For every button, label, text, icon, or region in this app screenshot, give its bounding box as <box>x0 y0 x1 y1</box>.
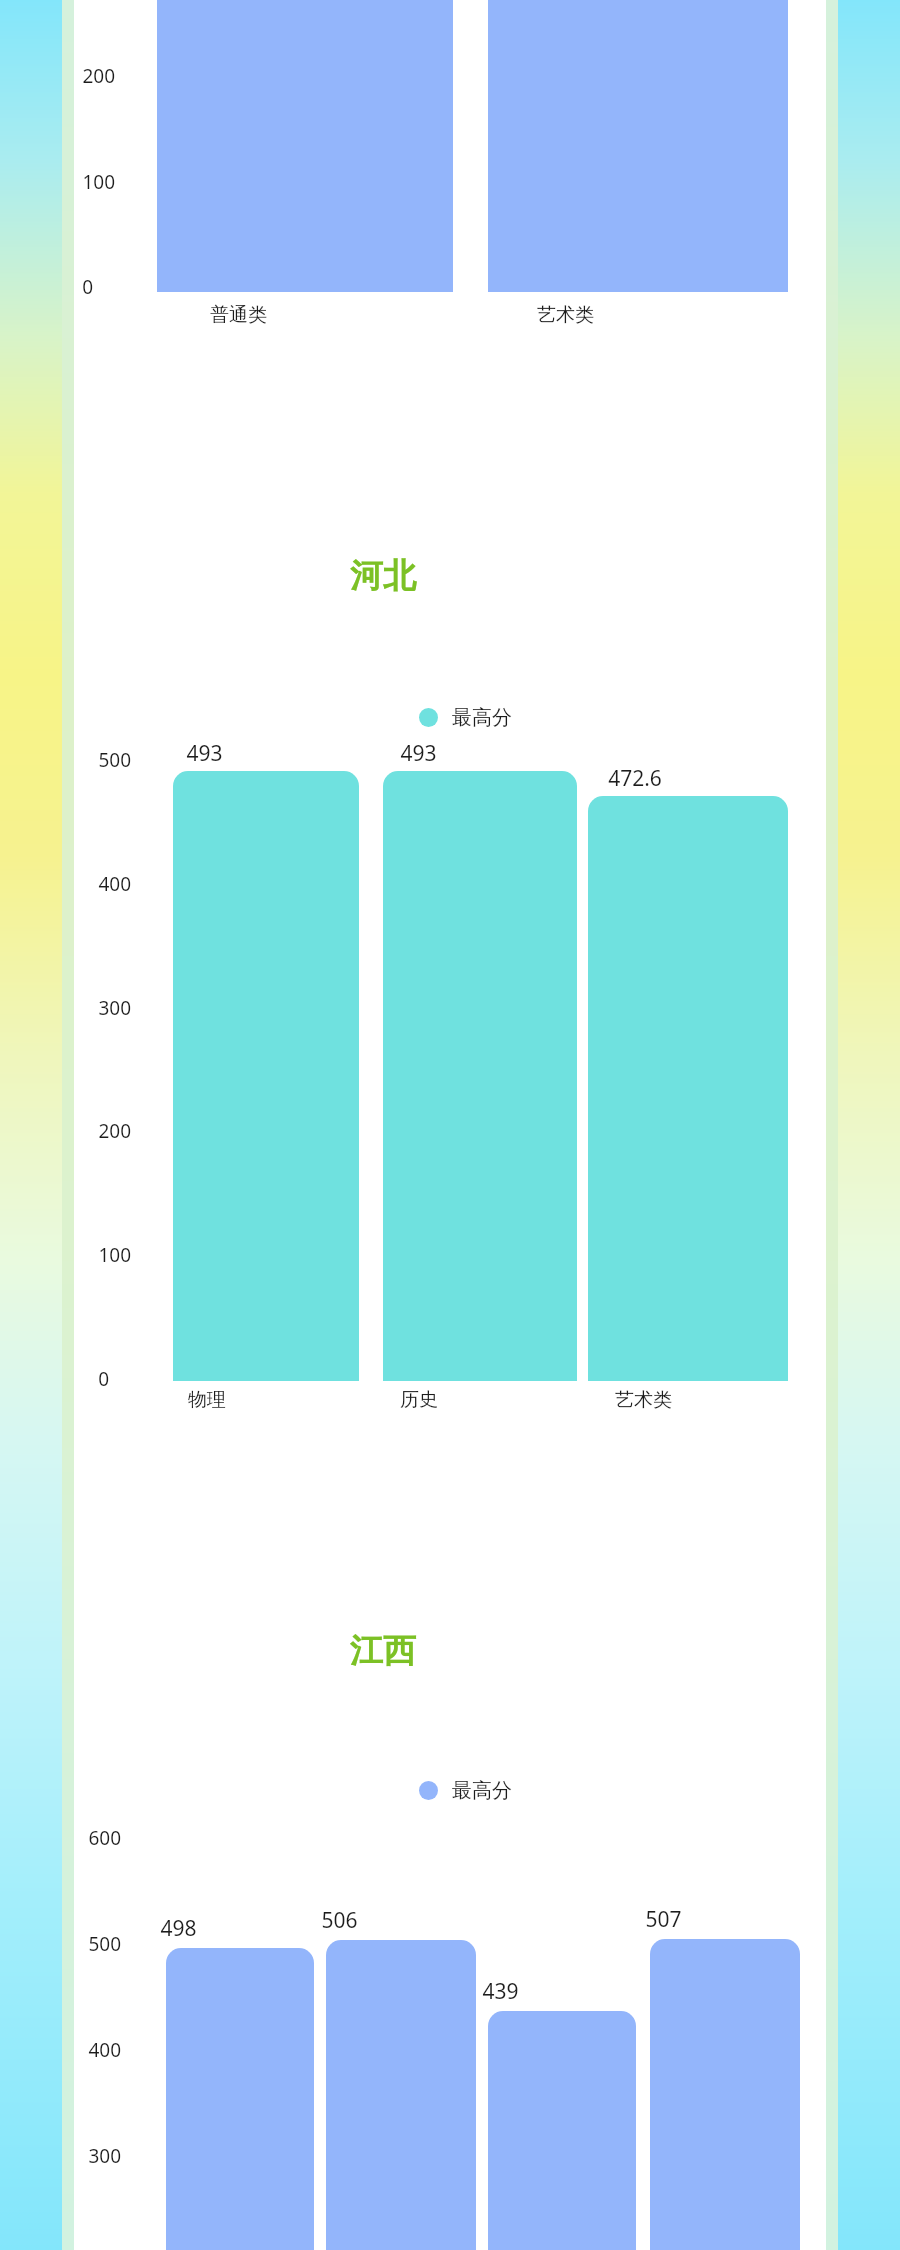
staticText: 最高分 <box>452 705 512 730</box>
staticText: 400 <box>98 871 131 897</box>
button[interactable]: 历史 493 <box>383 771 577 1381</box>
staticText: 300 <box>88 2143 121 2169</box>
staticText: 200 <box>98 1118 131 1144</box>
staticText: 100 <box>82 169 115 195</box>
staticText: 500 <box>88 1931 121 1957</box>
staticText: 200 <box>82 63 115 89</box>
staticText: 472.6 <box>608 764 662 793</box>
button[interactable]: 506 <box>326 1940 476 2250</box>
staticText: 600 <box>88 1825 121 1851</box>
button[interactable] <box>411 698 591 738</box>
staticText: 艺术类 <box>537 303 594 327</box>
staticText: 100 <box>98 1242 131 1268</box>
staticText: 物理 <box>188 1388 226 1412</box>
staticText: 历史 <box>400 1388 438 1412</box>
staticText: 300 <box>98 995 131 1021</box>
staticText: 江西 <box>350 1630 416 1672</box>
staticText: 493 <box>186 739 223 768</box>
staticText: 439 <box>482 1977 519 2006</box>
button[interactable] <box>411 1771 591 1811</box>
staticText: 最高分 <box>452 1778 512 1803</box>
staticText: 498 <box>160 1914 197 1943</box>
staticText: 0 <box>82 274 93 300</box>
button[interactable]: 艺术类 472.6 <box>588 796 788 1381</box>
staticText: 507 <box>645 1905 682 1934</box>
staticText: 500 <box>98 747 131 773</box>
staticText: 400 <box>88 2037 121 2063</box>
staticText: 506 <box>321 1906 358 1935</box>
staticText: 河北 <box>350 555 416 597</box>
staticText: 493 <box>400 739 437 768</box>
button[interactable]: 439 <box>488 2011 636 2250</box>
button[interactable]: 物理 493 <box>173 771 359 1381</box>
staticText: 普通类 <box>210 303 267 327</box>
staticText: 0 <box>98 1366 109 1392</box>
staticText: 艺术类 <box>615 1388 672 1412</box>
button[interactable]: 498 <box>166 1948 314 2250</box>
button[interactable]: 507 <box>650 1939 800 2250</box>
